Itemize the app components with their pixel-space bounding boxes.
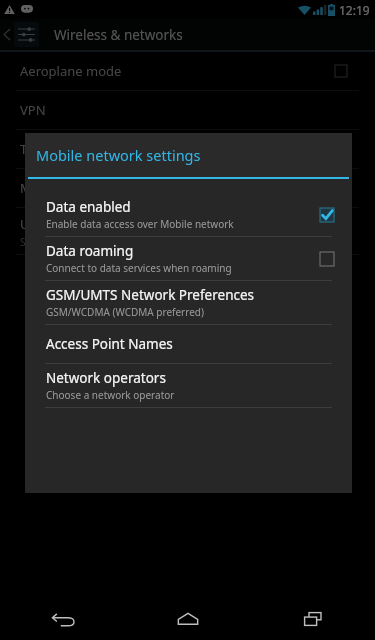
button[interactable]: Access Point Names: [25, 325, 352, 363]
staticText: Access Point Names: [46, 335, 173, 353]
button[interactable]: GSM/UMTS Network Preferences: [25, 281, 352, 324]
staticText: 12:19: [339, 2, 370, 18]
button[interactable]: Home: [125, 598, 250, 640]
staticText: GSM/UMTS Network Preferences: [46, 286, 255, 304]
button[interactable]: VPN: [0, 91, 375, 129]
button[interactable]: Tethering & portable hotspot: [0, 130, 375, 168]
staticText: Enable data access over Mobile network: [46, 217, 234, 231]
button[interactable]: Data enabled: [25, 193, 352, 236]
button[interactable]: Data roaming: [25, 237, 352, 280]
button[interactable]: Aeroplane mode: [0, 52, 375, 90]
button[interactable]: USB Internet: [0, 208, 375, 254]
staticText: Tethering & portable hotspot: [20, 140, 198, 158]
staticText: Network operators: [46, 369, 166, 387]
staticText: Share Windows PC internet via USB: [20, 235, 186, 249]
button[interactable]: Recent apps: [250, 598, 375, 640]
staticText: USB Internet: [20, 215, 99, 233]
button[interactable]: Navigate up, Wireless & networks: [0, 22, 45, 47]
staticText: Mobile network settings: [36, 145, 201, 165]
staticText: Connect to data services when roaming: [46, 261, 232, 275]
staticText: Wireless & networks: [54, 26, 183, 44]
staticText: Data roaming: [46, 242, 134, 260]
staticText: Mobile networks: [20, 179, 122, 197]
staticText: GSM/WCDMA (WCDMA preferred): [46, 305, 204, 319]
button[interactable]: Mobile networks: [0, 169, 375, 207]
staticText: Data enabled: [46, 198, 131, 216]
button[interactable]: Network operators: [25, 364, 352, 407]
staticText: VPN: [20, 101, 46, 119]
button[interactable]: Back: [0, 598, 125, 640]
staticText: Choose a network operator: [46, 388, 175, 402]
staticText: Aeroplane mode: [20, 62, 122, 80]
